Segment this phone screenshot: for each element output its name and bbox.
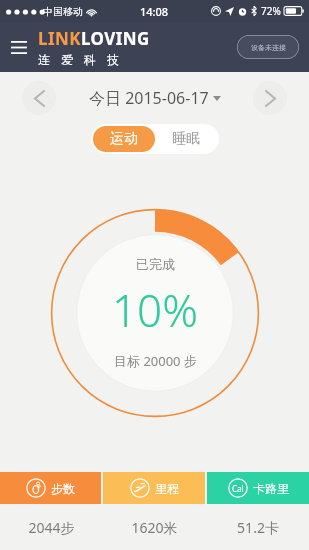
staticText: 步数 bbox=[51, 481, 75, 496]
button[interactable]: 步数 bbox=[0, 472, 101, 504]
button[interactable]: 运动 bbox=[93, 126, 155, 152]
staticText: 连 爱 科 技 bbox=[38, 51, 121, 67]
staticText: 已完成 bbox=[136, 256, 175, 272]
staticText: 10% bbox=[112, 280, 198, 340]
button[interactable]: 今日 2015-06-17 bbox=[89, 87, 209, 109]
button[interactable]: 睡眠 bbox=[155, 126, 217, 152]
staticText: 51.2卡 bbox=[237, 518, 279, 537]
staticText: 目标 20000 步 bbox=[114, 352, 197, 370]
staticText: 1620米 bbox=[131, 518, 178, 537]
staticText: 设备未连接 bbox=[251, 43, 286, 52]
staticText: 14:08 bbox=[140, 4, 169, 19]
staticText: Cal bbox=[232, 483, 244, 494]
button[interactable]: 设备未连接 bbox=[237, 35, 299, 59]
button[interactable]: Cal bbox=[207, 472, 309, 504]
staticText: 里程 bbox=[155, 481, 179, 496]
staticText: 2044步 bbox=[28, 518, 75, 537]
staticText: LINK bbox=[38, 27, 81, 50]
button[interactable]: 里程 bbox=[103, 472, 205, 504]
staticText: 睡眠 bbox=[172, 130, 200, 148]
staticText: 运动 bbox=[110, 130, 138, 148]
staticText: LOVING bbox=[81, 27, 150, 50]
button[interactable]: Menu bbox=[4, 32, 34, 62]
staticText: 中国移动 bbox=[43, 5, 83, 18]
button[interactable]: Previous day bbox=[22, 81, 56, 115]
button[interactable]: Next day bbox=[253, 81, 287, 115]
staticText: 卡路里 bbox=[253, 481, 289, 496]
staticText: 72% bbox=[261, 4, 281, 18]
